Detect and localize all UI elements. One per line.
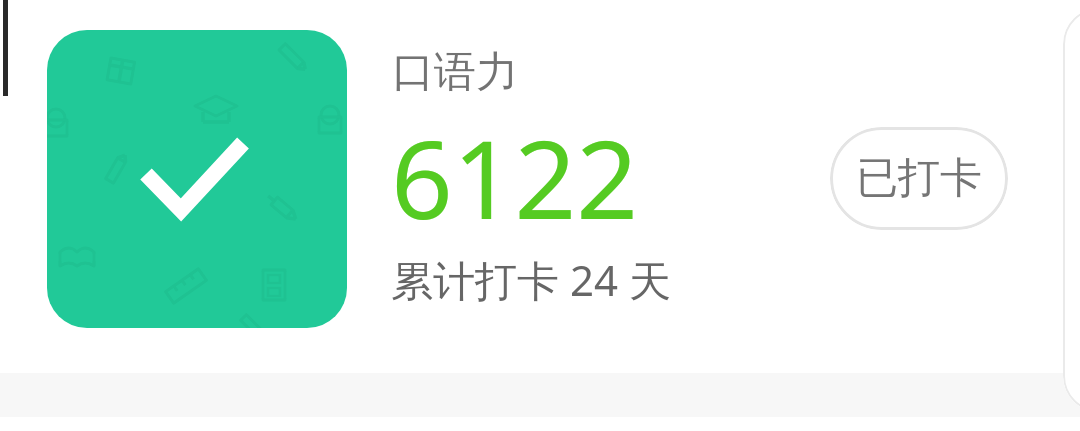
button[interactable] <box>47 30 347 328</box>
staticText: 6122 <box>391 104 639 251</box>
staticText: 口语力 <box>392 46 518 99</box>
staticText: 已打卡 <box>856 152 982 205</box>
button[interactable]: 已打卡 <box>830 127 1008 230</box>
staticText: 累计打卡 24 天 <box>391 251 671 308</box>
